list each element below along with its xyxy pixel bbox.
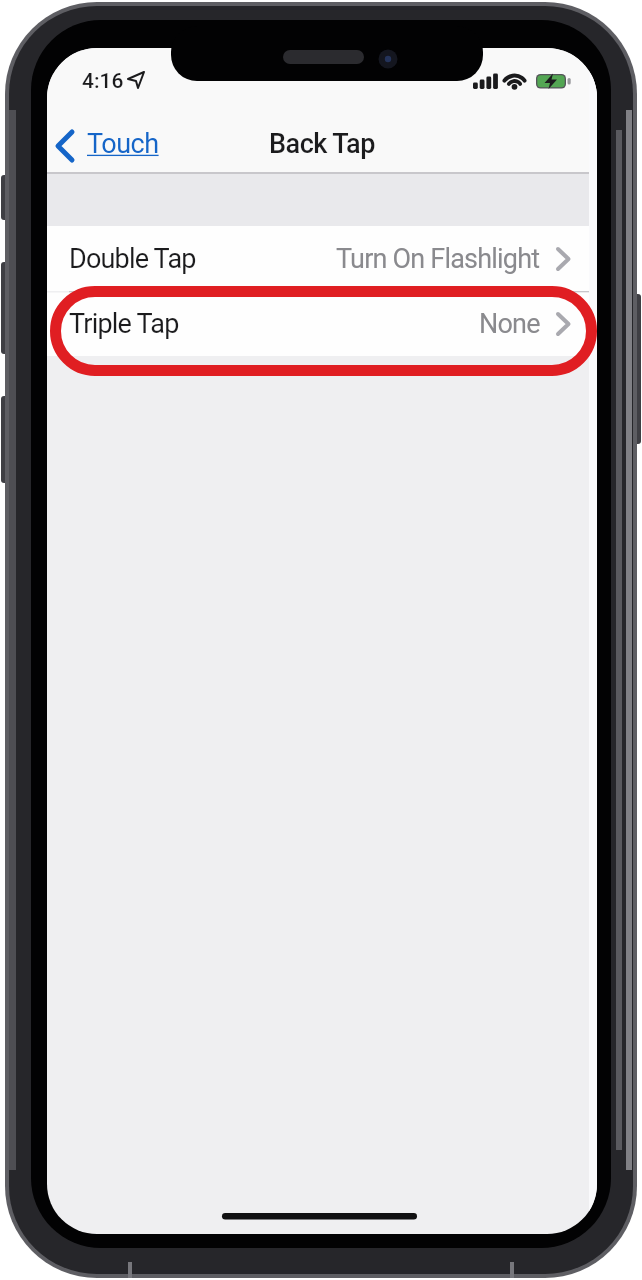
button[interactable]: Double Tap	[47, 226, 597, 291]
button[interactable]: Triple Tap	[47, 292, 597, 356]
staticText: Double Tap	[69, 243, 196, 275]
staticText: 4:16	[82, 69, 124, 94]
staticText: Turn On Flashlight	[336, 243, 540, 275]
staticText: None	[479, 308, 540, 340]
staticText: Back Tap	[269, 128, 375, 160]
button[interactable]: Touch	[52, 126, 168, 166]
staticText: Triple Tap	[69, 308, 179, 340]
staticText: Touch	[87, 128, 159, 160]
